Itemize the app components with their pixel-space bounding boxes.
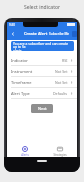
staticText: Create Alert	[24, 31, 48, 37]
staticText: Select indicator	[24, 4, 61, 11]
button[interactable]: Timeframe	[7, 77, 77, 88]
button[interactable]: You are a subscriber and can create up t…	[11, 41, 74, 51]
staticText: Alert Type	[11, 91, 30, 96]
button[interactable]: Account	[72, 27, 77, 40]
staticText: Defaults	[53, 91, 68, 96]
staticText: Next	[38, 106, 47, 111]
staticText: Not Set	[55, 80, 68, 85]
staticText: Strategies	[53, 153, 67, 157]
staticText: Subscribe Me	[49, 32, 70, 36]
button[interactable]: Back	[7, 27, 18, 40]
staticText: RSI	[62, 58, 68, 63]
button[interactable]: Indicator	[7, 55, 77, 66]
staticText: Alerts	[21, 153, 29, 157]
button[interactable]: Subscribe Me	[48, 32, 71, 36]
button[interactable]: Next	[31, 104, 53, 113]
staticText: Not Set	[55, 69, 68, 74]
button[interactable]: Strategies	[42, 144, 77, 157]
button[interactable]: Alert Type	[7, 88, 77, 99]
staticText: Timeframe	[11, 80, 32, 85]
button[interactable]: Instrument	[7, 66, 77, 77]
button[interactable]: Alerts	[7, 144, 42, 157]
staticText: Instrument	[11, 69, 33, 74]
staticText: You are a subscriber and can create up t…	[13, 41, 72, 51]
staticText: Indicator	[11, 58, 28, 63]
staticText: 9:30	[9, 23, 15, 27]
